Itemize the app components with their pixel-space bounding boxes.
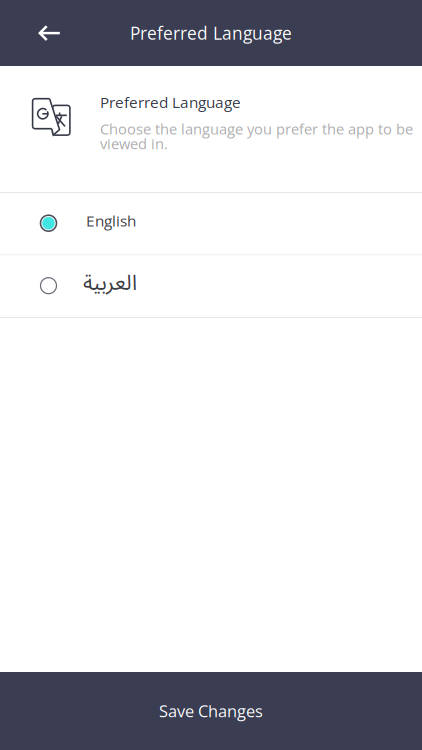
button[interactable]: English [0,193,422,254]
staticText: Preferred Language [100,91,241,112]
button[interactable]: Back [0,8,81,58]
button[interactable]: العربية [0,255,422,317]
staticText: English [86,210,136,231]
staticText: Save Changes [159,700,263,722]
staticText: Preferred Language [130,21,292,45]
staticText: Choose the language you prefer the app t… [100,119,413,154]
staticText: العربية [82,260,136,306]
button[interactable]: Save Changes [0,672,422,750]
